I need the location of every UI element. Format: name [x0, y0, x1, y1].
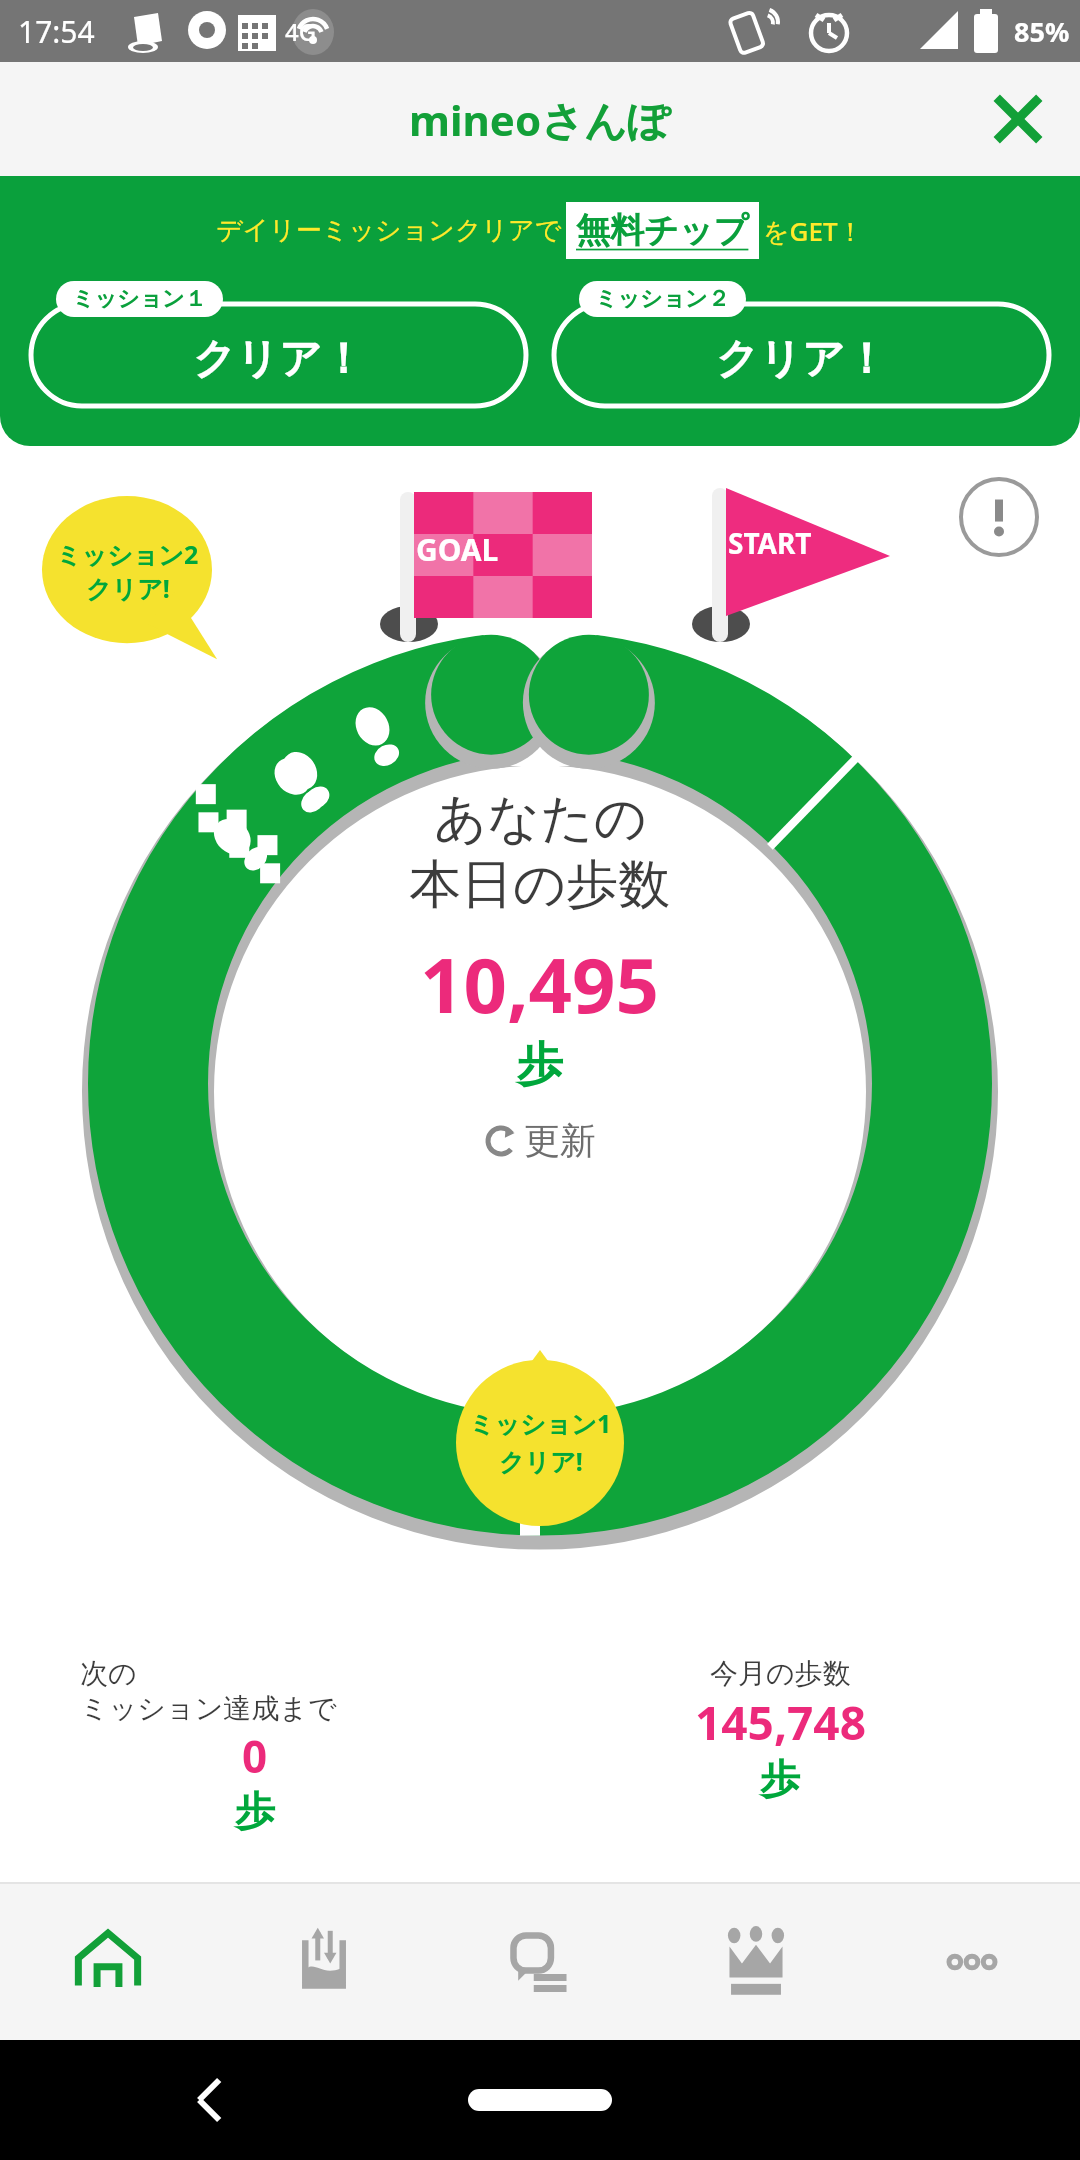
- staticText: クリア!: [499, 1444, 583, 1478]
- button[interactable]: Rewards: [648, 1884, 864, 2040]
- staticText: デイリーミッションクリアで: [216, 214, 562, 247]
- button[interactable]: クリア！: [28, 281, 529, 409]
- staticText: 歩: [517, 1036, 563, 1094]
- staticText: 4G: [285, 15, 317, 48]
- staticText: をGET！: [763, 213, 864, 249]
- staticText: 本日の歩数: [409, 852, 671, 918]
- staticText: 更新: [524, 1118, 596, 1163]
- button[interactable]: 無料チップ: [576, 209, 749, 252]
- button[interactable]: 更新: [458, 1110, 622, 1171]
- button[interactable]: クリア！: [551, 281, 1052, 409]
- staticText: 次の: [80, 1656, 137, 1691]
- staticText: 10,495: [420, 932, 660, 1036]
- staticText: mineoさんぽ: [409, 91, 671, 148]
- button[interactable]: Chat: [432, 1884, 648, 2040]
- staticText: 17:54: [18, 11, 95, 52]
- staticText: ミッション２: [595, 285, 730, 313]
- staticText: ミッション1: [469, 1406, 612, 1440]
- staticText: 今月の歩数: [710, 1656, 851, 1691]
- staticText: 0: [242, 1726, 268, 1786]
- staticText: 85%: [1014, 13, 1070, 50]
- staticText: 歩: [235, 1786, 275, 1836]
- staticText: あなたの: [434, 786, 647, 852]
- staticText: 無料チップ: [576, 209, 749, 252]
- staticText: ミッション2: [56, 537, 199, 571]
- staticText: クリア！: [716, 333, 887, 386]
- staticText: GOAL: [416, 529, 499, 570]
- staticText: 145,748: [695, 1691, 866, 1754]
- staticText: START: [728, 524, 812, 562]
- button[interactable]: Home: [0, 1884, 216, 2040]
- staticText: ミッション１: [72, 285, 207, 313]
- staticText: ミッション達成まで: [80, 1691, 337, 1726]
- button[interactable]: More: [864, 1884, 1080, 2040]
- staticText: 歩: [760, 1754, 800, 1804]
- button[interactable]: Close: [980, 81, 1056, 157]
- button[interactable]: Data transfer: [216, 1884, 432, 2040]
- button[interactable]: Information: [958, 476, 1040, 558]
- staticText: クリア！: [193, 333, 364, 386]
- staticText: クリア!: [86, 571, 170, 605]
